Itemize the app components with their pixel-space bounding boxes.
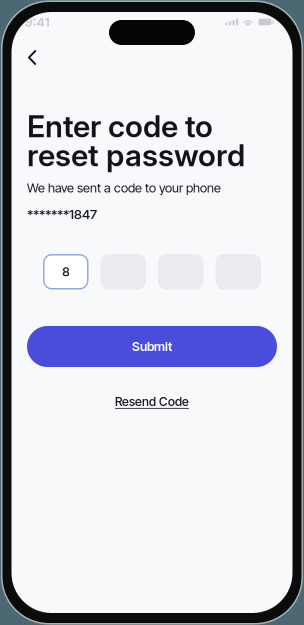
button[interactable]: Submit bbox=[27, 326, 277, 367]
staticText: *******1847 bbox=[27, 206, 97, 222]
button[interactable]: Back bbox=[11, 45, 50, 70]
staticText: Submit bbox=[132, 339, 172, 354]
staticText: 9:41 bbox=[24, 14, 49, 30]
button[interactable]: Resend Code bbox=[11, 394, 292, 408]
staticText: Resend Code bbox=[115, 394, 189, 409]
staticText: reset password bbox=[27, 137, 245, 173]
staticText: Enter code to bbox=[27, 108, 213, 144]
button[interactable]: Code digit 8 bbox=[43, 254, 88, 289]
staticText: We have sent a code to your phone bbox=[27, 180, 221, 195]
staticText: 8 bbox=[62, 264, 69, 279]
